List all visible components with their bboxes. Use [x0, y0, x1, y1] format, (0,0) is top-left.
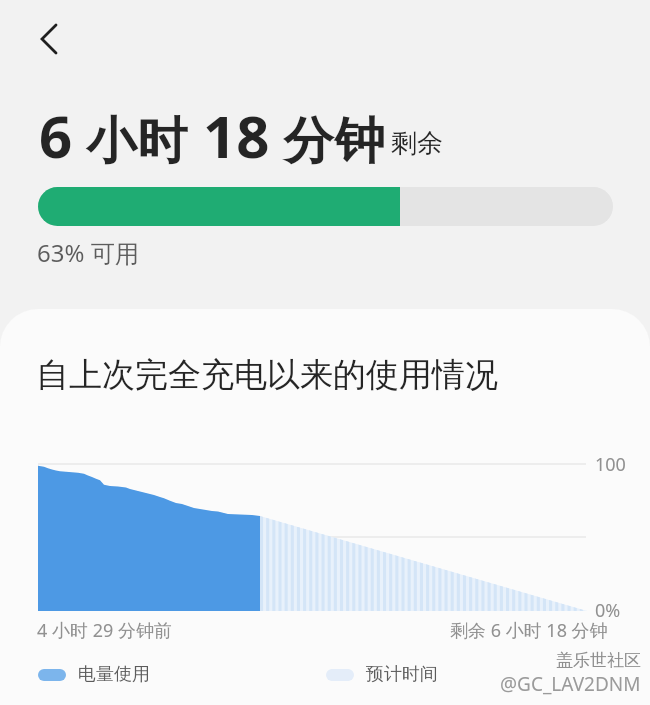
staticText: 6 小时 18 分钟 — [39, 96, 386, 175]
staticText: 0% — [595, 598, 621, 623]
staticText: 预计时间 — [366, 663, 438, 686]
button[interactable]: Battery level 63 percent — [38, 187, 613, 226]
staticText: 100 — [595, 452, 626, 477]
staticText: 剩余 — [391, 127, 443, 160]
staticText: 4 小时 29 分钟前 — [37, 618, 172, 643]
button[interactable]: 预计时间 — [326, 663, 438, 686]
button[interactable]: 电量使用 — [38, 663, 150, 686]
staticText: @GC_LAV2DNM — [500, 671, 641, 697]
staticText: 盖乐世社区 — [556, 650, 641, 671]
staticText: 剩余 6 小时 18 分钟 — [450, 618, 608, 643]
staticText: 自上次完全充电以来的使用情况 — [36, 354, 498, 396]
staticText: 电量使用 — [78, 663, 150, 686]
staticText: 63% 可用 — [37, 236, 139, 269]
button[interactable]: Back — [24, 13, 76, 65]
